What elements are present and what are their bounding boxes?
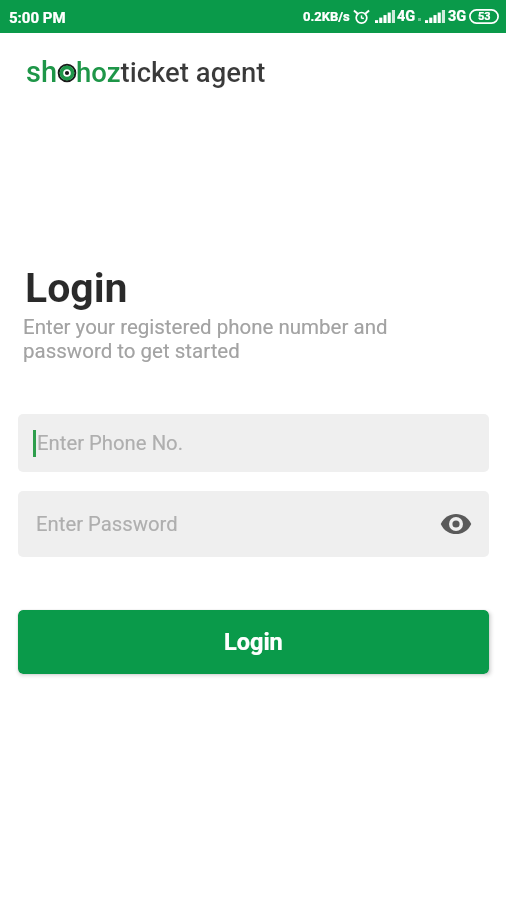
staticText: 4G xyxy=(397,8,416,25)
staticText: 53 xyxy=(478,10,491,23)
button[interactable]: Login xyxy=(18,610,489,674)
staticText: 5:00 PM xyxy=(9,9,66,27)
staticText: sh xyxy=(26,55,58,89)
staticText: 0.2KB/s xyxy=(303,9,350,24)
button[interactable]: Enter Password xyxy=(18,491,489,557)
staticText: hozticket agent xyxy=(76,56,266,88)
staticText: Enter your registered phone number and p… xyxy=(23,315,388,363)
button[interactable]: Toggle password visibility xyxy=(437,505,475,543)
button[interactable]: Enter Phone No. xyxy=(18,414,489,472)
staticText: Login xyxy=(224,628,283,656)
staticText: Enter Password xyxy=(36,512,178,536)
staticText: Enter Phone No. xyxy=(37,431,184,455)
staticText: 3G xyxy=(448,8,467,25)
staticText: Login xyxy=(25,264,128,312)
